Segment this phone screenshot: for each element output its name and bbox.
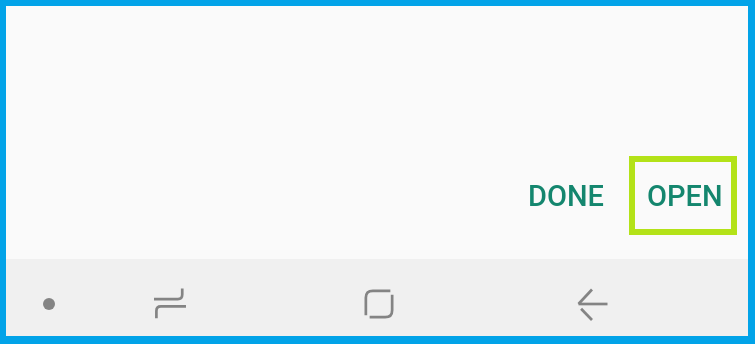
button[interactable]: Home — [356, 281, 402, 327]
button[interactable]: Back — [570, 281, 616, 327]
staticText: DONE — [528, 179, 604, 213]
button[interactable]: Recent apps — [146, 279, 194, 327]
button[interactable]: DONE — [514, 167, 618, 225]
button[interactable]: OPEN — [629, 156, 737, 235]
button[interactable]: More options — [29, 284, 69, 324]
staticText: OPEN — [647, 179, 723, 213]
